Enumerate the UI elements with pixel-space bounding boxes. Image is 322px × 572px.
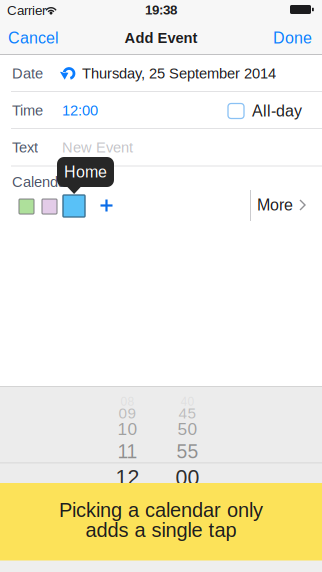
button[interactable]: Time bbox=[0, 92, 322, 129]
staticText: 55 bbox=[176, 441, 198, 462]
staticText: Time bbox=[12, 102, 43, 119]
staticText: 50 bbox=[177, 419, 197, 439]
staticText: 11 bbox=[117, 441, 137, 462]
staticText: Cancel bbox=[8, 29, 59, 47]
staticText: Home bbox=[64, 163, 107, 181]
staticText: Add Event bbox=[124, 30, 197, 46]
staticText: Carrier bbox=[7, 3, 46, 18]
staticText: 08 bbox=[120, 395, 134, 408]
staticText: 45 bbox=[178, 405, 196, 422]
button[interactable]: Date bbox=[0, 55, 322, 91]
button[interactable]: Home calendar, selected bbox=[63, 195, 85, 217]
staticText: adds a single tap bbox=[85, 519, 236, 541]
button[interactable]: Done bbox=[242, 24, 320, 52]
staticText: All-day bbox=[252, 102, 302, 120]
button[interactable]: All-day bbox=[228, 103, 322, 119]
staticText: 10 bbox=[117, 419, 137, 439]
staticText: 19:38 bbox=[145, 3, 177, 17]
button[interactable]: Green calendar bbox=[19, 199, 34, 214]
staticText: Picking a calendar only bbox=[59, 499, 263, 521]
button[interactable]: Add calendar bbox=[100, 199, 113, 212]
staticText: More bbox=[257, 196, 293, 214]
staticText: 00 bbox=[175, 466, 199, 489]
staticText: 12:00 bbox=[62, 102, 98, 119]
staticText: 40 bbox=[180, 395, 194, 408]
button[interactable]: Cancel bbox=[2, 24, 78, 52]
staticText: Date bbox=[12, 65, 43, 82]
staticText: Text bbox=[12, 139, 38, 156]
staticText: Thursday, 25 September 2014 bbox=[82, 65, 276, 82]
staticText: New Event bbox=[62, 139, 133, 156]
button[interactable]: Purple calendar bbox=[42, 199, 57, 214]
button[interactable]: Text bbox=[0, 129, 322, 166]
button[interactable]: More bbox=[257, 192, 317, 218]
staticText: 09 bbox=[118, 405, 136, 422]
staticText: Done bbox=[273, 29, 312, 47]
staticText: Calendar bbox=[12, 174, 71, 190]
staticText: 12 bbox=[115, 466, 139, 489]
